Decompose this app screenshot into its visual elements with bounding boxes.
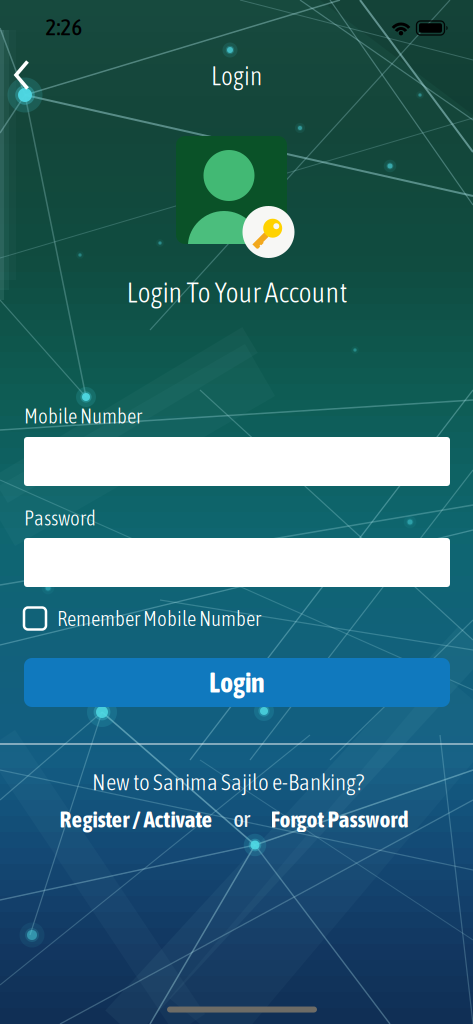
staticText: or [233,806,249,832]
button[interactable]: Register / Activate [59,806,212,832]
staticText: Login [209,666,265,699]
button[interactable]: Remember Mobile Number [24,607,450,630]
staticText: Register / Activate [59,806,212,832]
staticText: Remember Mobile Number [57,607,261,630]
button[interactable]: Forgot Password [270,806,408,832]
staticText: Login [211,61,262,90]
staticText: Password [24,506,96,530]
staticText: Forgot Password [270,806,408,832]
staticText: Mobile Number [24,404,142,428]
staticText: 2:26 [45,14,82,40]
staticText: Login To Your Account [126,276,347,309]
button[interactable]: Login [24,658,450,707]
button[interactable]: Back [2,54,46,95]
staticText: New to Sanima Sajilo e-Banking? [92,769,364,795]
